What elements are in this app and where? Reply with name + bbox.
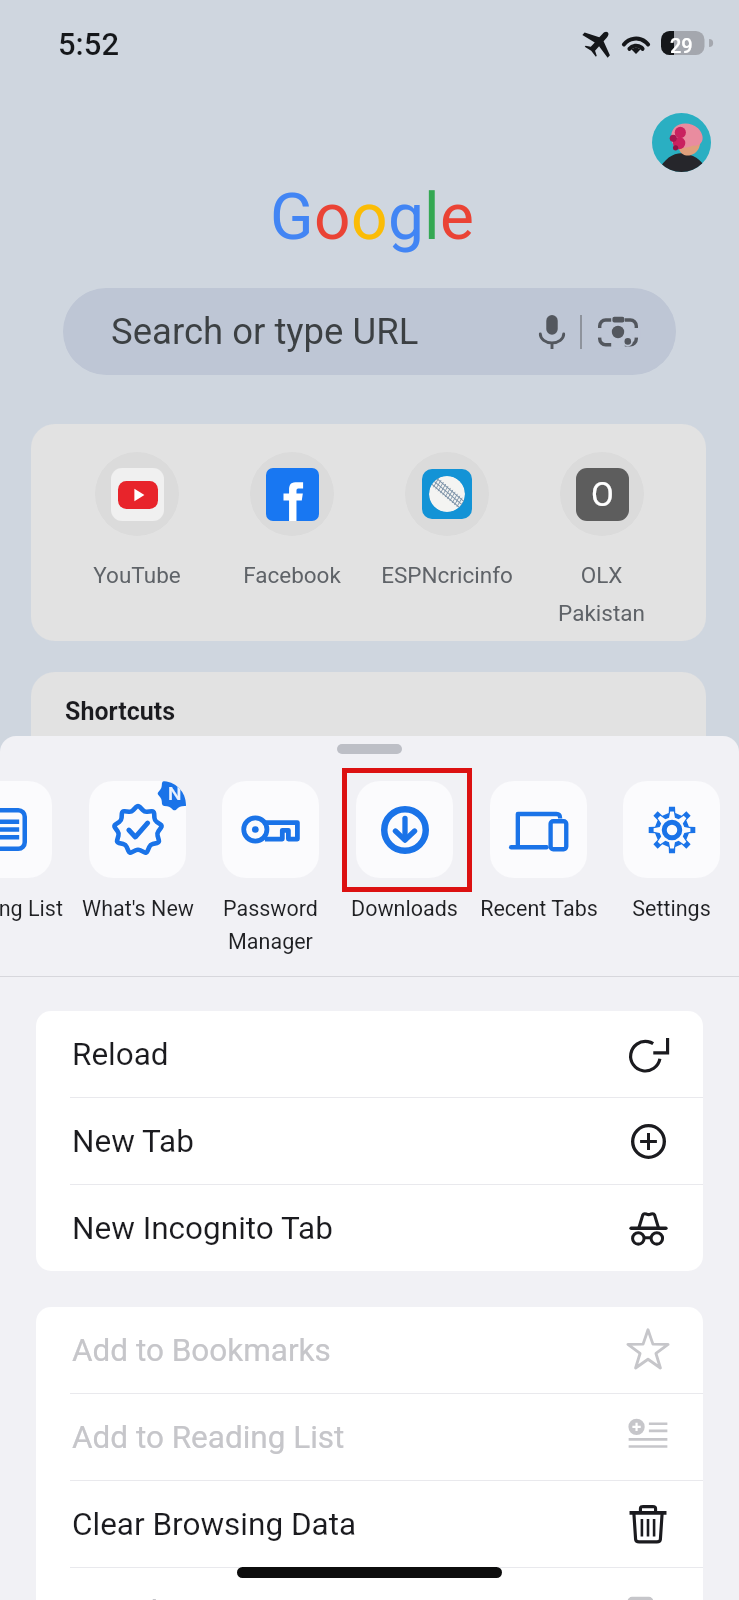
button[interactable]: Search or type URL [63,288,676,375]
button[interactable]: O [524,452,679,627]
staticText: 5:52 [58,26,120,62]
button[interactable]: YouTube [59,452,214,588]
button[interactable]: N [71,774,204,921]
staticText: o [351,180,388,255]
staticText: New Incognito Tab [72,1210,333,1247]
button[interactable]: Recent Tabs [472,774,605,921]
staticText: e [440,180,474,255]
button[interactable]: Clear Browsing Data [36,1481,703,1567]
staticText: OLX Pakistan [558,562,645,627]
button[interactable]: ESPNcricinfo [369,452,524,588]
button[interactable]: Add to Bookmarks [36,1307,703,1393]
staticText: Facebook [243,562,341,588]
staticText: New Tab [72,1123,194,1160]
button[interactable]: Settings [605,774,738,921]
button[interactable]: Voice search [532,312,572,352]
staticText: l [424,180,440,255]
staticText: g [388,180,424,255]
staticText: Shortcuts [65,697,176,726]
button[interactable]: Reload [36,1011,703,1097]
staticText: Reload [72,1036,169,1073]
button[interactable]: Facebook [214,452,369,588]
staticText: ESPNcricinfo [381,562,513,588]
staticText: Settings [632,896,711,921]
staticText: o [314,180,351,255]
button[interactable]: Password Manager [204,774,337,954]
staticText: N [168,782,182,804]
staticText: G [270,180,314,255]
staticText: Reading List [0,896,63,921]
button[interactable]: Reading List [0,774,70,921]
staticText: Password Manager [223,896,318,954]
button[interactable]: Search with camera [596,310,640,354]
staticText: Search or type URL [111,310,419,353]
staticText: Add to Reading List [72,1419,345,1456]
button[interactable]: Account [652,113,711,172]
button[interactable]: Add to Reading List [36,1394,703,1480]
staticText: Add to Bookmarks [72,1332,331,1369]
button[interactable]: New Incognito Tab [36,1185,703,1271]
button[interactable]: Downloads [338,774,471,921]
staticText: Clear Browsing Data [72,1506,357,1543]
staticText: YouTube [93,562,181,588]
staticText: O [591,475,614,514]
staticText: What's New [82,896,194,921]
staticText: Downloads [351,896,458,921]
button[interactable]: Translate... [36,1568,703,1600]
staticText: Recent Tabs [480,896,598,921]
staticText: 29 [670,34,693,57]
button[interactable]: New Tab [36,1098,703,1184]
